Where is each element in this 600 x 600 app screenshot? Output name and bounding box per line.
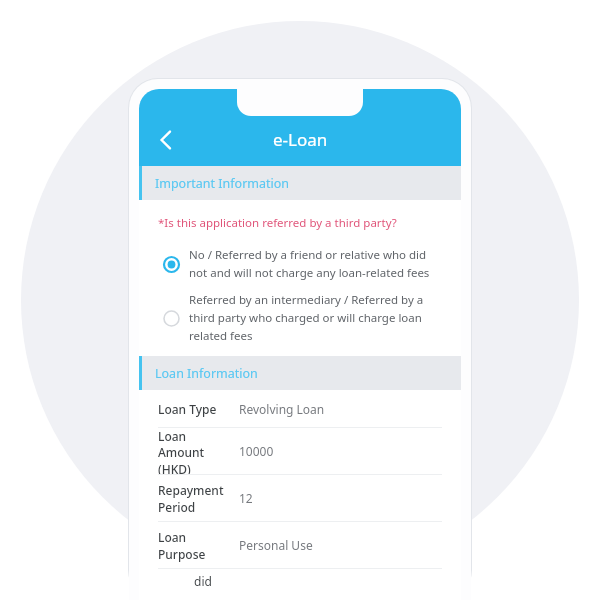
- staticText: did: [194, 573, 212, 589]
- button[interactable]: Loan Information: [139, 356, 461, 390]
- staticText: not and will not charge any loan-related…: [189, 265, 430, 281]
- staticText: e-Loan: [273, 128, 328, 151]
- staticText: *Is this application referred by a third…: [158, 215, 397, 231]
- button[interactable]: No / Referred by a friend or relative wh…: [158, 247, 445, 281]
- staticText: third party who charged or will charge l…: [189, 310, 422, 326]
- staticText: Loan Information: [155, 365, 258, 382]
- staticText: 12: [239, 490, 253, 506]
- staticText: No / Referred by a friend or relative wh…: [189, 247, 427, 263]
- staticText: Referred by an intermediary / Referred b…: [189, 292, 424, 308]
- staticText: Loan: [158, 529, 187, 545]
- staticText: Loan Amount: [158, 428, 228, 460]
- button[interactable]: Important Information: [139, 166, 461, 200]
- staticText: Repayment: [158, 482, 224, 498]
- button[interactable]: Loan Amount: [139, 428, 461, 474]
- staticText: related fees: [189, 328, 253, 344]
- staticText: Personal Use: [239, 537, 313, 553]
- staticText: Revolving Loan: [239, 401, 325, 417]
- button[interactable]: Back: [145, 119, 187, 161]
- staticText: Period: [158, 499, 196, 515]
- button[interactable]: Repayment: [139, 475, 461, 521]
- button[interactable]: Loan: [139, 522, 461, 568]
- staticText: Purpose: [158, 546, 206, 562]
- staticText: Loan Type: [158, 401, 217, 417]
- button[interactable]: Referred by an intermediary / Referred b…: [158, 292, 445, 344]
- staticText: 10000: [239, 443, 274, 459]
- staticText: Important Information: [155, 175, 290, 192]
- button[interactable]: Loan Type: [139, 390, 461, 427]
- staticText: (HKD): [158, 461, 191, 474]
